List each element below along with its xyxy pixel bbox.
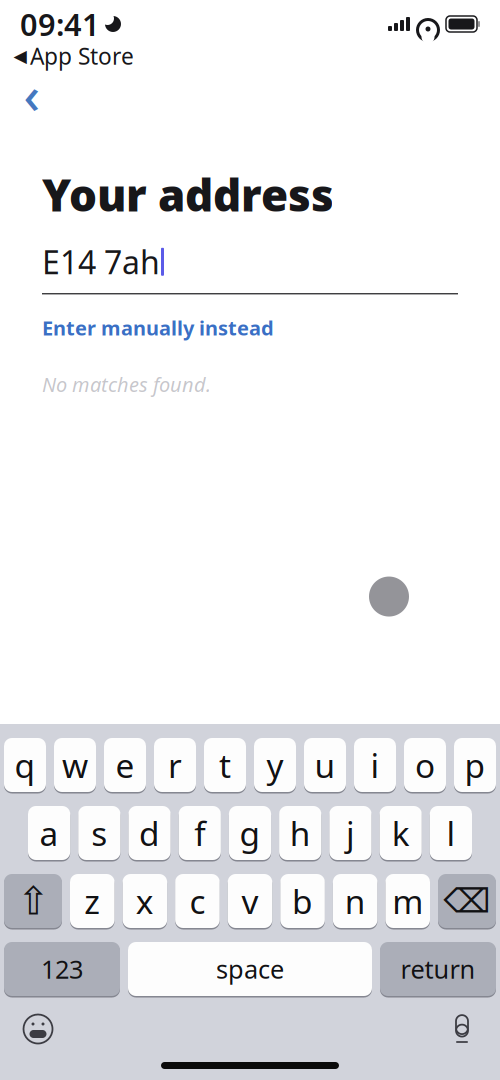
staticText: No matches found. [42,371,211,398]
staticText: b [292,879,313,923]
button[interactable]: Shift [4,873,62,929]
button[interactable]: z [70,873,115,929]
button[interactable]: h [279,805,321,861]
staticText: d [139,811,160,855]
staticText: v [241,879,258,923]
staticText: s [91,811,107,855]
button[interactable]: p [454,737,496,793]
button[interactable]: Dictate [440,1007,484,1051]
staticText: h [290,811,311,855]
button[interactable]: y [254,737,296,793]
staticText: m [392,879,423,923]
button[interactable]: space [128,941,372,997]
button[interactable]: s [78,805,120,861]
button[interactable]: t [204,737,246,793]
button[interactable]: r [154,737,196,793]
button[interactable]: c [175,873,220,929]
staticText: a [40,811,59,855]
staticText: ⇧ [17,879,49,923]
staticText: n [345,879,366,923]
staticText: c [189,879,205,923]
staticText: o [415,743,435,787]
button[interactable]: Enter manually instead [42,310,458,345]
staticText: r [168,743,182,787]
staticText: k [392,811,410,855]
staticText: 123 [41,952,83,986]
staticText: f [194,811,205,855]
button[interactable]: Back [10,77,54,121]
button[interactable]: v [228,873,272,929]
staticText: w [62,743,88,787]
staticText: ◀ [13,46,26,66]
button[interactable]: d [128,805,171,861]
button[interactable]: return [380,941,496,997]
staticText: p [464,743,485,787]
staticText: e [115,743,134,787]
button[interactable]: m [385,873,430,929]
staticText: return [400,952,475,986]
button[interactable]: e [104,737,146,793]
staticText: y [266,743,283,787]
button[interactable]: f [179,805,221,861]
staticText: q [14,743,35,787]
button[interactable]: b [280,873,325,929]
button[interactable]: q [4,737,46,793]
button[interactable]: n [333,873,377,929]
staticText: ‹ [23,60,40,128]
staticText: u [314,743,335,787]
button[interactable]: 123 [4,941,120,997]
staticText: x [136,879,154,923]
button[interactable]: i [354,737,396,793]
staticText: App Store [30,41,134,71]
button[interactable]: j [329,805,371,861]
staticText: z [84,879,100,923]
staticText: 09:41 [20,4,100,44]
staticText: t [219,743,231,787]
staticText: Enter manually instead [42,314,274,341]
button[interactable]: x [123,873,167,929]
staticText: Your address [42,165,334,223]
button[interactable]: u [304,737,346,793]
staticText: E14 7ah [42,240,160,283]
button[interactable]: k [380,805,422,861]
button[interactable]: o [404,737,446,793]
staticText: space [216,952,284,986]
button[interactable]: a [28,805,70,861]
staticText: i [370,743,379,787]
staticText: j [346,811,355,855]
button[interactable]: l [430,805,472,861]
staticText: l [446,811,455,855]
button[interactable]: Delete [438,873,496,929]
button[interactable]: w [54,737,96,793]
button[interactable]: Emoji [16,1007,60,1051]
button[interactable]: ◀ [14,39,134,73]
staticText: ⌫ [443,882,490,920]
button[interactable]: g [229,805,271,861]
staticText: g [239,811,260,855]
